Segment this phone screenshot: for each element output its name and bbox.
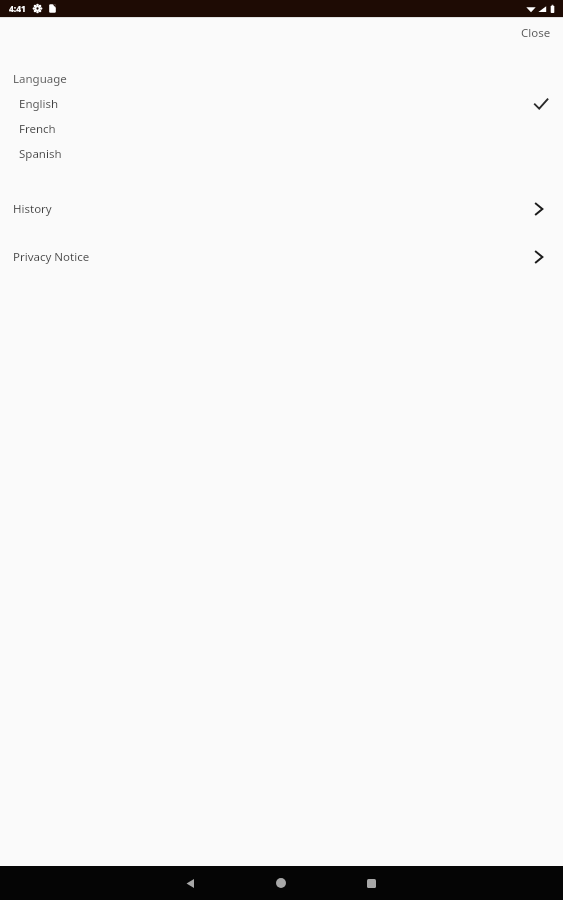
staticText: Spanish: [19, 146, 62, 162]
staticText: Close: [521, 25, 551, 41]
button[interactable]: French: [0, 116, 563, 141]
button[interactable]: Close: [515, 21, 557, 45]
staticText: Privacy Notice: [13, 249, 90, 265]
button[interactable]: Home: [261, 866, 301, 900]
button[interactable]: Spanish: [0, 141, 563, 166]
button[interactable]: Privacy Notice: [0, 244, 563, 269]
staticText: 4:41: [9, 3, 26, 15]
staticText: History: [13, 201, 52, 217]
staticText: Language: [13, 71, 67, 87]
button[interactable]: History: [0, 196, 563, 221]
button[interactable]: English: [0, 91, 563, 116]
button[interactable]: Back: [170, 866, 210, 900]
staticText: English: [19, 96, 59, 112]
staticText: French: [19, 121, 56, 137]
button[interactable]: Recent apps: [351, 866, 391, 900]
